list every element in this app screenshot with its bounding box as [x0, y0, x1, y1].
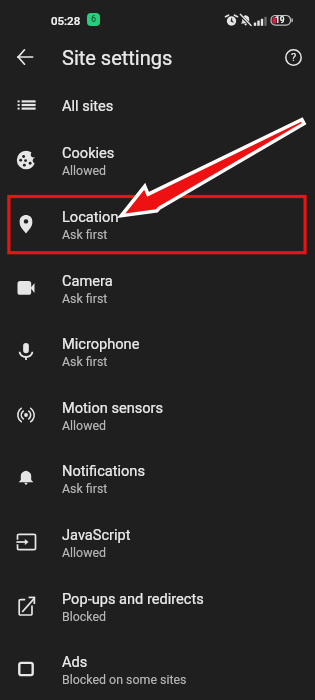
staticText: Location: [62, 208, 119, 225]
button[interactable]: JavaScript: [0, 510, 315, 573]
staticText: Allowed: [62, 545, 107, 560]
button[interactable]: Microphone: [0, 319, 315, 382]
button[interactable]: Motion sensors: [0, 383, 315, 446]
staticText: Blocked: [62, 609, 107, 624]
button[interactable]: Ads: [0, 637, 315, 700]
staticText: Motion sensors: [62, 399, 164, 416]
button[interactable]: Pop-ups and redirects: [0, 574, 315, 637]
staticText: Allowed: [62, 418, 107, 433]
staticText: Notifications: [62, 462, 145, 479]
staticText: Microphone: [62, 335, 140, 352]
button[interactable]: Notifications: [0, 446, 315, 509]
staticText: Ask first: [62, 354, 108, 369]
staticText: Site settings: [62, 46, 173, 69]
staticText: 05:28: [51, 14, 81, 27]
staticText: 6: [91, 14, 97, 25]
staticText: Ask first: [62, 291, 108, 306]
button[interactable]: Back: [7, 39, 43, 75]
staticText: 19: [275, 15, 285, 25]
staticText: Ask first: [62, 227, 108, 242]
button[interactable]: All sites: [0, 78, 315, 132]
staticText: Camera: [62, 272, 113, 289]
staticText: JavaScript: [62, 526, 131, 543]
button[interactable]: Location: [0, 192, 315, 255]
staticText: Allowed: [62, 163, 107, 178]
staticText: Ask first: [62, 481, 108, 496]
button[interactable]: Cookies: [0, 128, 315, 191]
staticText: ?: [291, 51, 297, 64]
staticText: Cookies: [62, 144, 115, 161]
staticText: All sites: [62, 97, 114, 114]
staticText: Ads: [62, 653, 88, 670]
button[interactable]: Camera: [0, 256, 315, 319]
staticText: Blocked on some sites: [62, 672, 187, 687]
button[interactable]: Help: [275, 39, 311, 75]
staticText: Pop-ups and redirects: [62, 590, 204, 607]
